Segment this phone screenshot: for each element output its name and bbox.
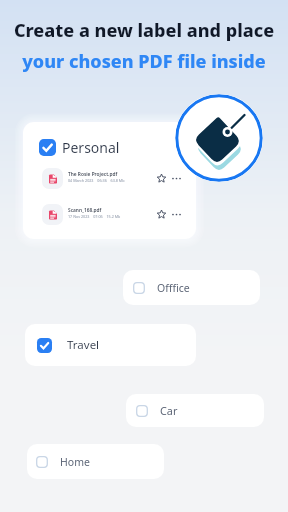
button[interactable]: Favorite [157,210,166,219]
staticText: 17 Nov 2023 07:06 15.2 Mb [68,214,121,219]
staticText: The Rosie Project.pdf [68,171,118,178]
button[interactable]: More options [171,173,182,184]
staticText: 04 March 2023 06:36 63.8 Mb [68,178,125,183]
button[interactable]: More options [171,209,182,220]
staticText: Scann_168.pdf [68,207,102,214]
button[interactable]: The Rosie Project.pdf [38,164,185,193]
button[interactable]: Home [27,444,164,479]
button[interactable]: Offfice [123,270,260,305]
staticText: Car [160,403,178,418]
staticText: Personal [62,138,120,157]
button[interactable]: Scann_168.pdf [38,200,185,229]
staticText: Offfice [157,281,190,295]
button[interactable]: Personal [23,122,196,239]
staticText: Create a new label and place [0,18,288,43]
button[interactable]: Label tag [175,94,263,182]
staticText: Travel [67,337,100,353]
staticText: Home [60,455,90,469]
button[interactable]: Travel [25,324,196,366]
button[interactable]: Car [126,394,264,427]
staticText: your chosen PDF file inside [0,49,288,74]
button[interactable]: Favorite [157,174,166,183]
